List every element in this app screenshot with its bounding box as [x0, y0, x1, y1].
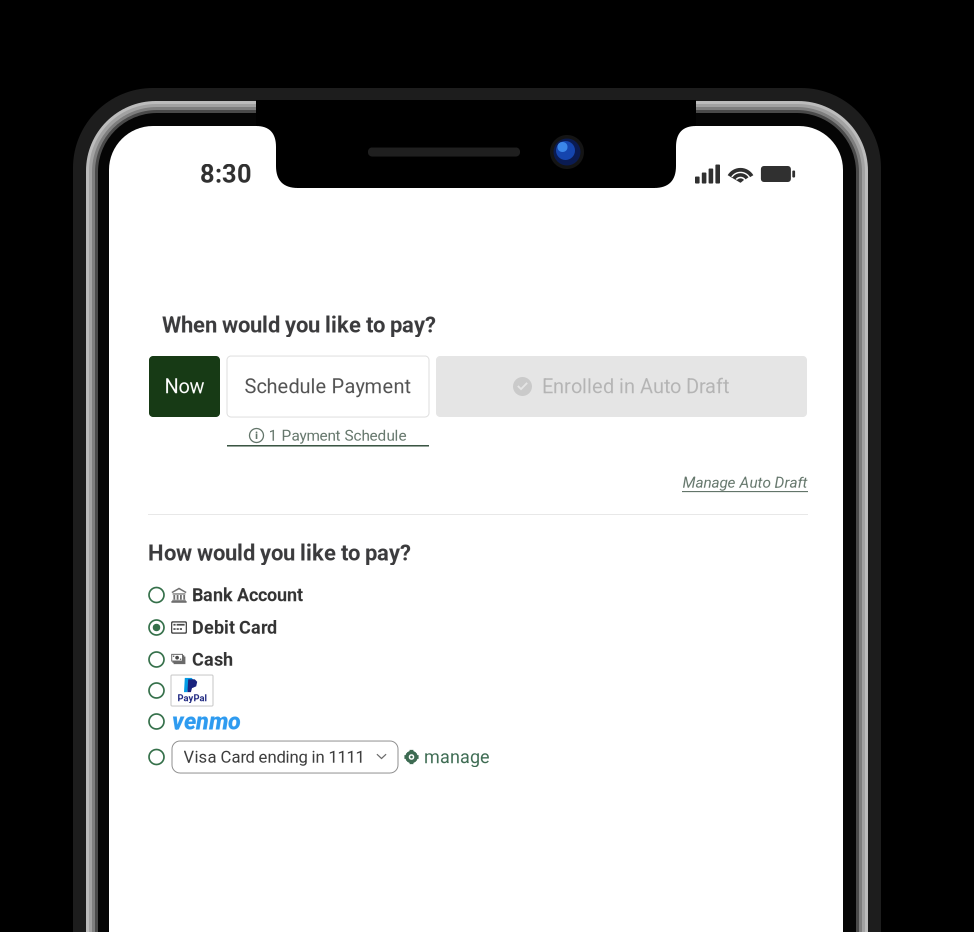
- staticText: Now: [164, 375, 204, 398]
- staticText: Visa Card ending in 1111: [183, 747, 364, 767]
- staticText: i: [255, 429, 258, 442]
- staticText: Enrolled in Auto Draft: [542, 375, 730, 398]
- staticText: venmo: [172, 708, 241, 735]
- staticText: Debit Card: [192, 617, 277, 638]
- button[interactable]: Bank Account: [149, 579, 809, 611]
- button[interactable]: Now: [149, 356, 220, 417]
- button[interactable]: Schedule Payment: [227, 356, 429, 417]
- button[interactable]: Manage Auto Draft: [682, 474, 808, 492]
- button[interactable]: i: [227, 426, 429, 446]
- staticText: When would you like to pay?: [162, 312, 436, 338]
- staticText: Bank Account: [192, 584, 303, 606]
- staticText: Schedule Payment: [244, 375, 411, 398]
- button[interactable]: Debit Card: [149, 611, 809, 644]
- button[interactable]: Cash: [149, 644, 809, 675]
- staticText: Cash: [192, 649, 233, 670]
- staticText: Manage Auto Draft: [682, 473, 807, 491]
- staticText: manage: [424, 746, 490, 768]
- staticText: 8:30: [200, 159, 252, 189]
- staticText: 1 Payment Schedule: [268, 426, 406, 444]
- button[interactable]: PayPal: [149, 675, 809, 706]
- button[interactable]: venmo: [149, 706, 809, 737]
- staticText: PayPal: [177, 692, 206, 703]
- staticText: How would you like to pay?: [148, 540, 411, 566]
- button[interactable]: Enrolled in Auto Draft: [436, 356, 807, 417]
- button[interactable]: Visa Card ending in 1111: [149, 737, 809, 777]
